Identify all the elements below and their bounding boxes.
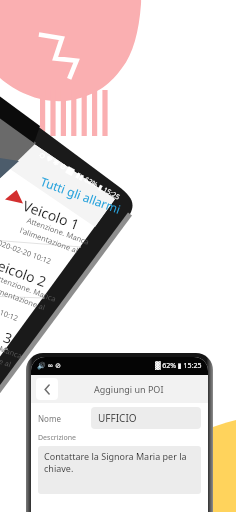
staticText: 🔊 ∞ ⊘ [37, 361, 62, 371]
staticText: 2020-02-20 10:12 [0, 236, 53, 266]
staticText: Veicolo 2 [0, 253, 49, 291]
staticText: ⛭ ♥ ✱ ⚙ ⬛ ▮▮ 62% ▮ 15:25 [37, 150, 122, 203]
staticText: Attenzione. Manca [0, 272, 58, 304]
button[interactable]: Back [36, 378, 58, 400]
staticText: Attenzione. Manca [0, 329, 24, 361]
staticText: Contattare la Signora Maria per la chiav… [44, 450, 195, 474]
staticText: Tutti gli allarmi [38, 173, 123, 217]
staticText: Veicolo 1 [20, 196, 82, 234]
staticText: 2020-02-20 10:12 [0, 293, 20, 323]
staticText: l'alimentazione al [19, 225, 80, 256]
staticText: Nome [38, 413, 61, 424]
staticText: Aggiungi un POI [94, 383, 164, 395]
staticText: ▓ 62% ▮ 15:25 [155, 361, 202, 371]
button[interactable]: Contattare la Signora Maria per la chiav… [38, 446, 201, 494]
button[interactable]: Nome [38, 403, 201, 433]
staticText: l'alimentazione al [0, 282, 47, 313]
staticText: Descrizione [38, 433, 77, 443]
staticText: Veicolo 3 [0, 310, 15, 348]
staticText: l'alimentazione al [0, 339, 13, 370]
staticText: UFFICIO [98, 411, 137, 425]
staticText: Attenzione. Manca [26, 215, 91, 247]
